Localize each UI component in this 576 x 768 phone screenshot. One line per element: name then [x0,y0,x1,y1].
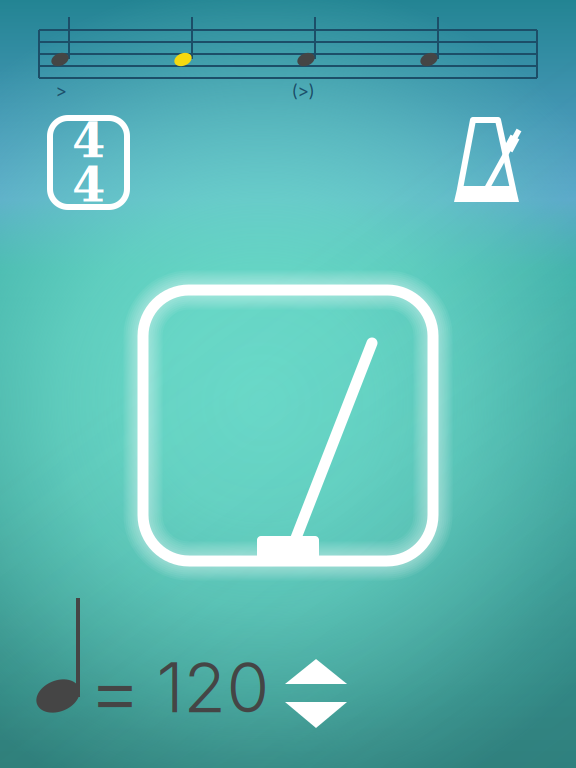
staticText: = [88,640,142,740]
button[interactable]: Increase tempo [0,0,576,768]
staticText: > [55,80,66,101]
button[interactable]: Time signature 4/4 [40,107,136,217]
staticText: 4 [72,156,105,213]
staticText: 120 [156,645,269,729]
button[interactable]: Start metronome [0,0,576,768]
staticText: (>) [291,80,314,101]
staticText: 4 [72,112,105,168]
button[interactable]: Decrease tempo [0,0,576,768]
button[interactable]: Metronome sound [0,0,576,768]
